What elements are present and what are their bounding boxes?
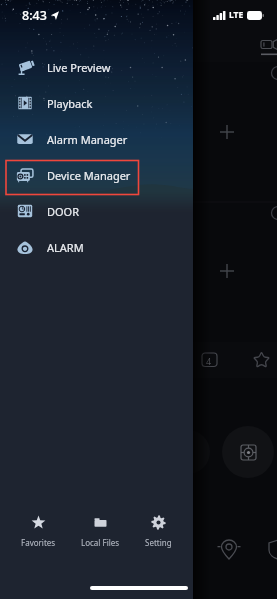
- button[interactable]: Alarm Manager: [0, 121, 193, 157]
- button[interactable]: ALARM: [0, 229, 193, 265]
- staticText: Local Files: [81, 537, 120, 548]
- button[interactable]: Device Manager: [0, 157, 193, 193]
- button[interactable]: Favorites: [13, 511, 64, 552]
- button[interactable]: Playback: [0, 85, 193, 121]
- staticText: Alarm Manager: [47, 132, 128, 147]
- staticText: ALARM: [47, 240, 84, 255]
- button[interactable]: Setting: [137, 511, 180, 552]
- button[interactable]: Live Preview: [0, 49, 193, 85]
- button[interactable]: DOOR: [0, 193, 193, 229]
- staticText: DOOR: [47, 204, 80, 219]
- staticText: LTE: [229, 9, 244, 21]
- staticText: Favorites: [21, 537, 56, 548]
- staticText: Live Preview: [47, 60, 111, 75]
- staticText: 8:43: [22, 7, 47, 24]
- staticText: Playback: [47, 96, 93, 111]
- staticText: Device Manager: [47, 168, 131, 183]
- staticText: Setting: [145, 537, 172, 548]
- button[interactable]: Local Files: [73, 511, 128, 552]
- staticText: 4: [206, 355, 212, 367]
